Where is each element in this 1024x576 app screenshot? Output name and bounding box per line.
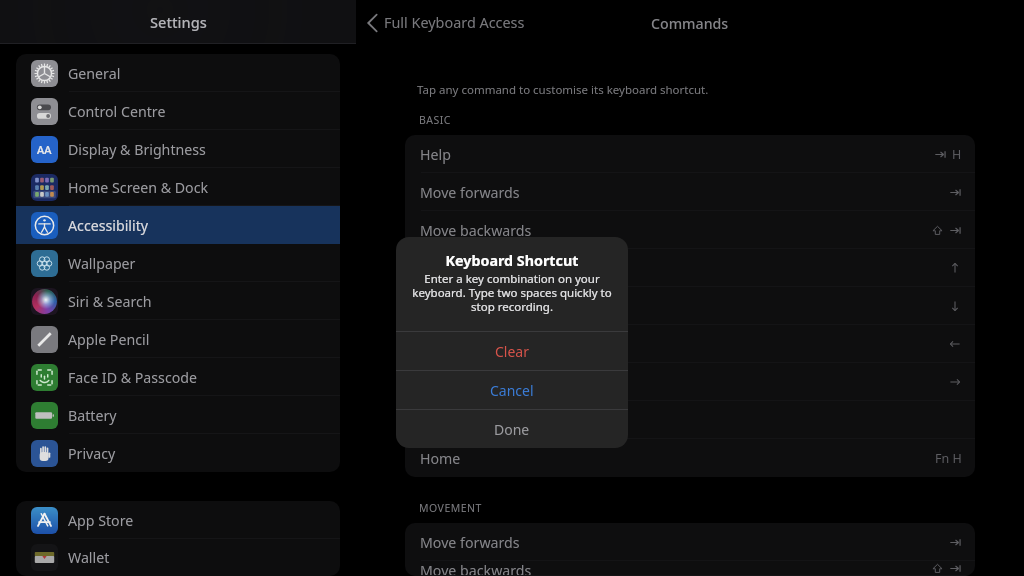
button[interactable]: Back to Full Keyboard Access: [367, 13, 525, 33]
staticText: Cancel: [490, 381, 534, 400]
staticText: Accessibility: [68, 216, 149, 235]
button[interactable]: Control Centre: [16, 92, 340, 130]
button[interactable]: Move backwards: [405, 561, 975, 576]
button[interactable]: Clear: [396, 332, 628, 370]
staticText: Full Keyboard Access: [384, 13, 525, 33]
button[interactable]: Privacy: [16, 434, 340, 472]
staticText: General: [68, 64, 121, 83]
button[interactable]: Move forwards: [405, 173, 975, 211]
staticText: Move forwards: [420, 183, 520, 202]
button[interactable]: Help: [405, 135, 975, 173]
staticText: Battery: [68, 406, 117, 425]
button[interactable]: Move backwards: [405, 211, 975, 249]
staticText: Wallpaper: [68, 254, 136, 273]
staticText: Clear: [495, 342, 529, 361]
button[interactable]: Cancel: [396, 371, 628, 409]
staticText: Move backwards: [420, 221, 532, 240]
staticText: Wallet: [68, 548, 110, 567]
button[interactable]: Apple Pencil: [16, 320, 340, 358]
button[interactable]: Move forwards: [405, 523, 975, 561]
staticText: Privacy: [68, 444, 116, 463]
button[interactable]: Wallet: [16, 539, 340, 576]
staticText: Tap any command to customise its keyboar…: [417, 82, 709, 98]
staticText: Move up: [420, 259, 478, 278]
staticText: Home Screen & Dock: [68, 178, 209, 197]
staticText: AA: [37, 142, 52, 157]
staticText: Keyboard Shortcut: [396, 251, 628, 270]
button[interactable]: Accessibility: [16, 206, 340, 244]
button[interactable]: Face ID & Passcode: [16, 358, 340, 396]
staticText: Siri & Search: [68, 292, 152, 311]
button[interactable]: Move up: [405, 249, 975, 287]
staticText: Apple Pencil: [68, 330, 150, 349]
button[interactable]: Done: [396, 410, 628, 448]
staticText: Home: [420, 449, 461, 468]
button[interactable]: General: [16, 54, 340, 92]
staticText: Settings: [150, 12, 207, 32]
staticText: MOVEMENT: [419, 501, 482, 515]
staticText: Fn H: [935, 450, 962, 467]
staticText: App Store: [68, 511, 134, 530]
staticText: H: [952, 146, 962, 163]
button[interactable]: Move right: [405, 363, 975, 401]
button[interactable]: Move left: [405, 325, 975, 363]
button[interactable]: Move down: [405, 287, 975, 325]
staticText: Commands: [651, 14, 729, 33]
button[interactable]: Home: [405, 439, 975, 477]
staticText: Control Centre: [68, 102, 166, 121]
staticText: Move right: [420, 373, 493, 392]
staticText: Done: [494, 420, 530, 439]
button[interactable]: AA: [16, 130, 340, 168]
button[interactable]: Siri & Search: [16, 282, 340, 320]
button[interactable]: App Store: [16, 501, 340, 539]
staticText: Move backwards: [420, 561, 532, 576]
staticText: Move down: [420, 297, 498, 316]
staticText: Move forwards: [420, 533, 520, 552]
staticText: Enter a key combination on your keyboard…: [407, 271, 617, 314]
button[interactable]: Wallpaper: [16, 244, 340, 282]
staticText: BASIC: [419, 113, 451, 127]
staticText: Help: [420, 145, 451, 164]
button[interactable]: Activate: [405, 401, 975, 439]
button[interactable]: Home Screen & Dock: [16, 168, 340, 206]
staticText: Display & Brightness: [68, 140, 206, 159]
staticText: Face ID & Passcode: [68, 368, 198, 387]
button[interactable]: Battery: [16, 396, 340, 434]
